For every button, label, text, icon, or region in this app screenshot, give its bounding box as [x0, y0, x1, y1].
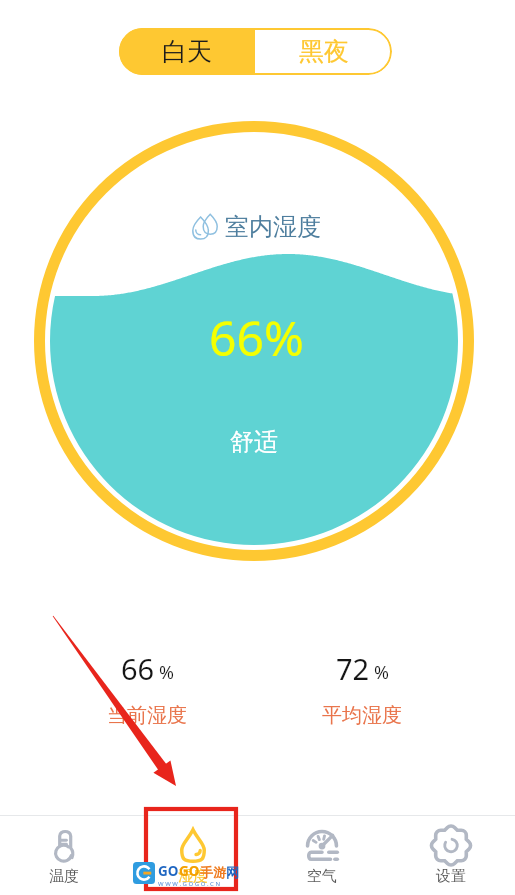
- button[interactable]: 72: [302, 649, 422, 728]
- button[interactable]: Humidity: [128, 816, 257, 895]
- button[interactable]: Settings: [386, 816, 515, 895]
- staticText: 网: [226, 864, 239, 880]
- staticText: 黑夜: [299, 36, 349, 67]
- staticText: %: [159, 660, 174, 685]
- button[interactable]: Temperature: [0, 816, 128, 895]
- staticText: 66%: [209, 305, 304, 370]
- staticText: 室内湿度: [225, 212, 321, 242]
- staticText: 手游: [200, 864, 226, 880]
- button[interactable]: 黑夜: [255, 28, 392, 75]
- staticText: 舒适: [230, 427, 278, 457]
- staticText: 平均湿度: [322, 703, 402, 728]
- staticText: 72: [336, 649, 370, 688]
- button[interactable]: Air quality: [257, 816, 386, 895]
- staticText: 设置: [436, 867, 466, 886]
- staticText: GO: [179, 862, 200, 880]
- staticText: 白天: [162, 36, 212, 67]
- staticText: %: [374, 660, 389, 685]
- other: Humidity: [180, 828, 206, 863]
- button[interactable]: 66: [87, 649, 207, 728]
- staticText: 当前湿度: [107, 703, 187, 728]
- staticText: 空气: [307, 867, 337, 886]
- staticText: 66: [121, 649, 155, 688]
- other: Temperature: [54, 829, 75, 863]
- staticText: W W W . G O G O . C N: [158, 880, 221, 888]
- other: Settings: [432, 828, 470, 863]
- staticText: GO: [158, 862, 179, 880]
- staticText: 温度: [49, 867, 79, 886]
- other: Air quality: [305, 828, 339, 863]
- staticText: 湿度: [178, 867, 208, 886]
- button[interactable]: 白天: [119, 28, 255, 75]
